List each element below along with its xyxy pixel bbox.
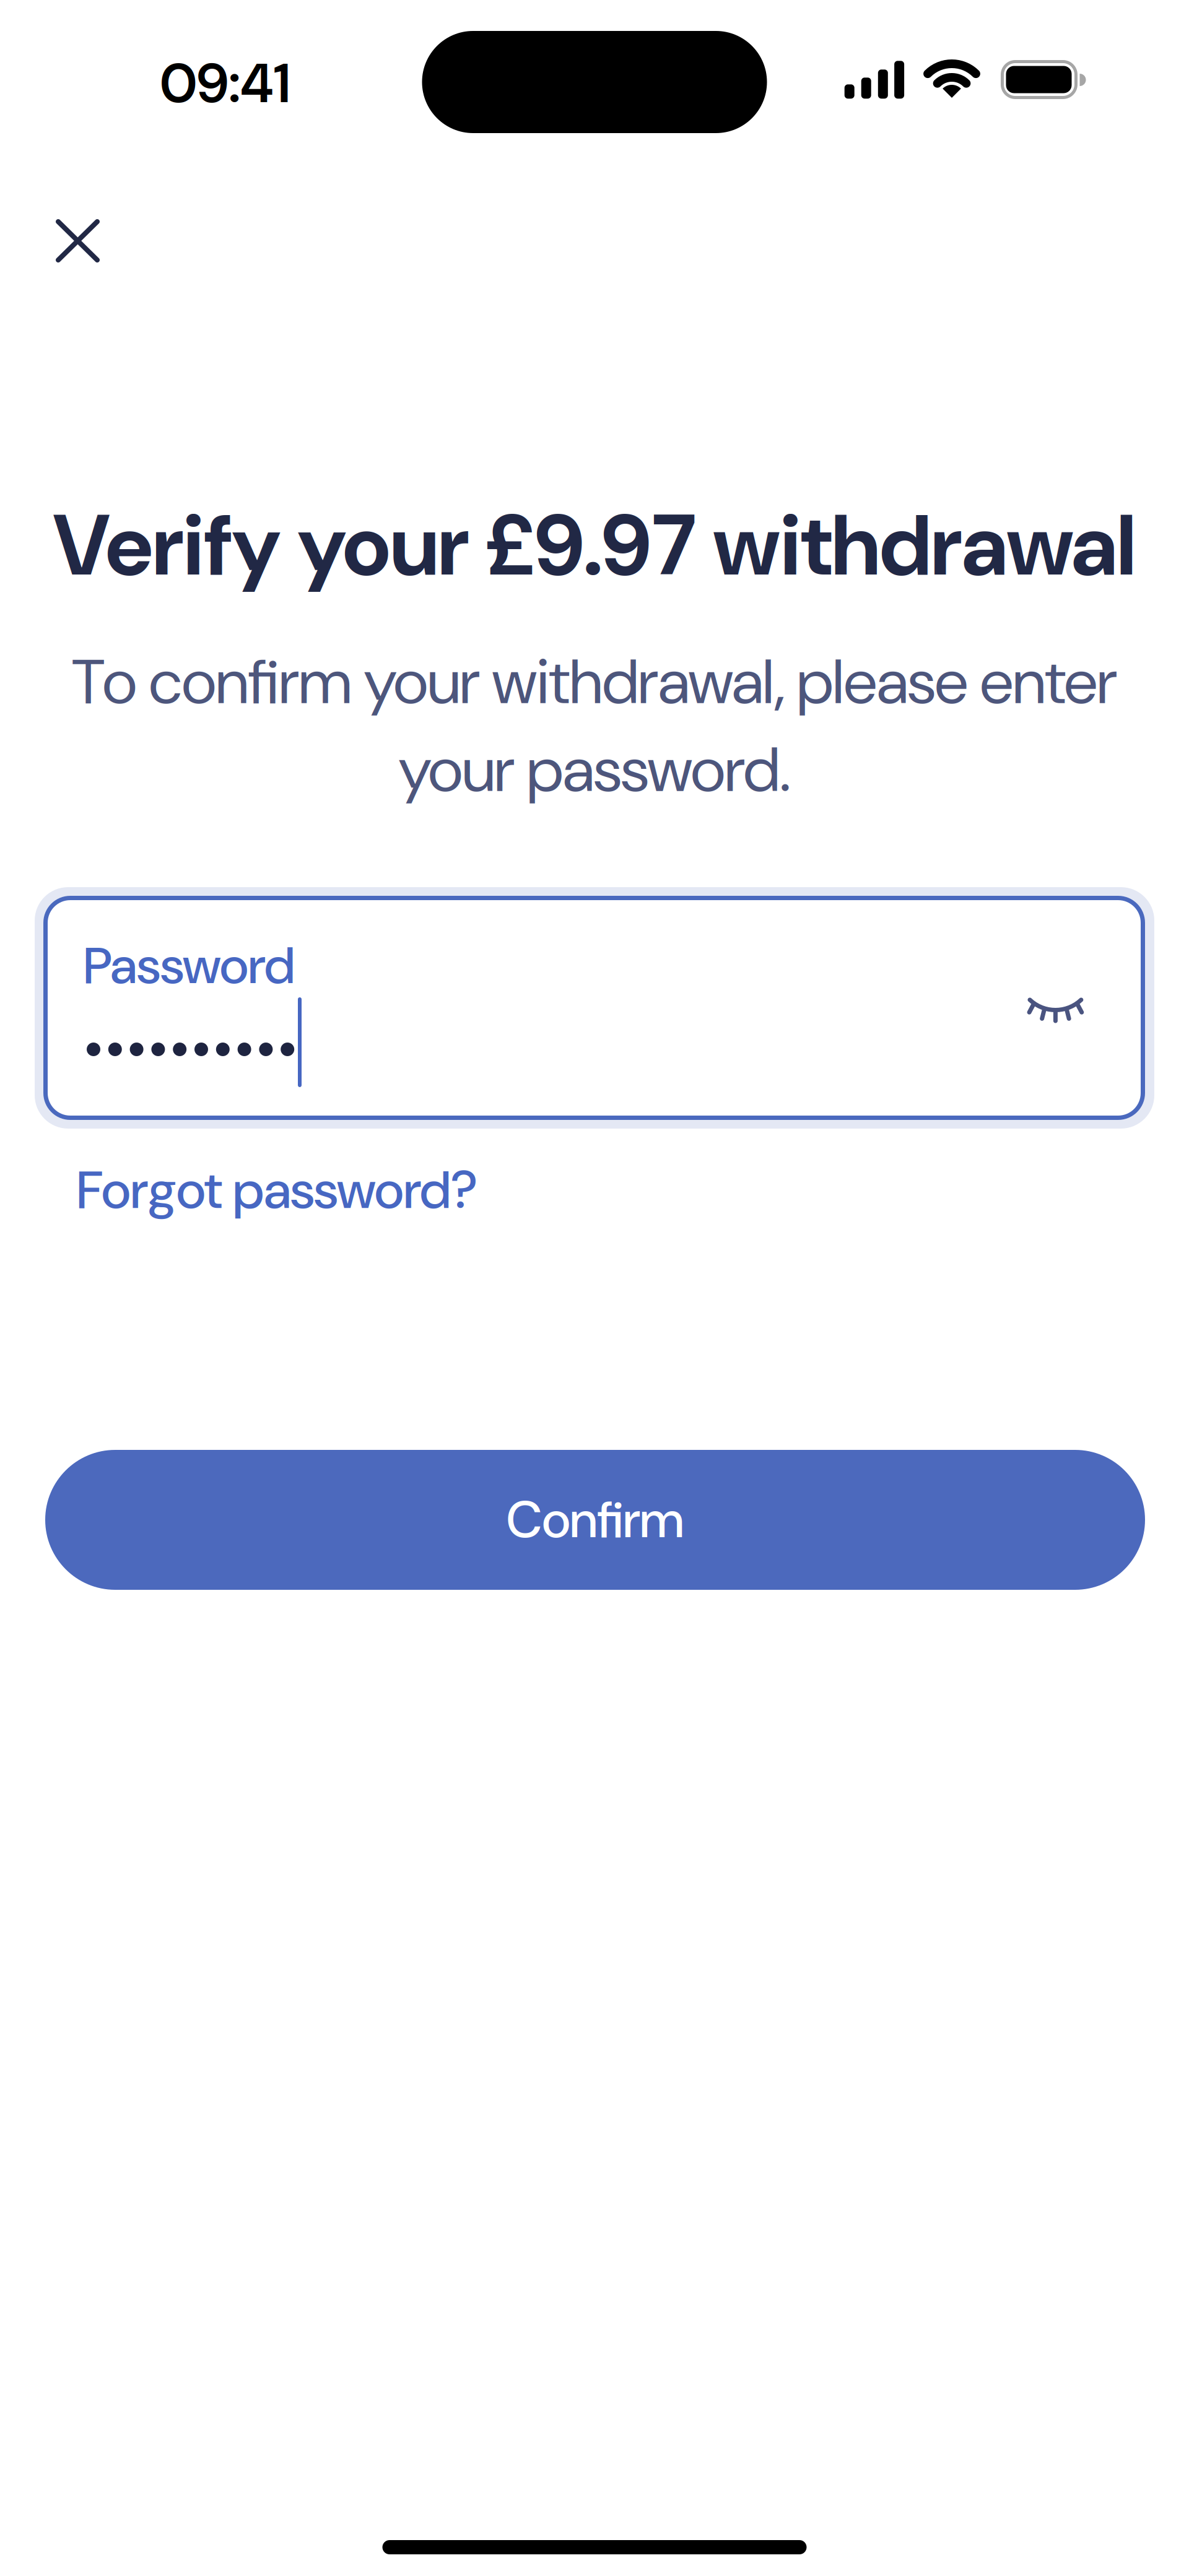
staticText: Password [84, 932, 295, 999]
staticText: Verify your £9.97 withdrawal [53, 491, 1136, 601]
staticText: 09:41 [160, 48, 290, 119]
staticText: Forgot password? [77, 1156, 478, 1224]
button[interactable]: Show password [1013, 981, 1099, 1037]
staticText: Confirm [506, 1487, 684, 1553]
button[interactable]: Close [48, 212, 107, 270]
button[interactable]: Confirm [45, 1450, 1145, 1590]
button[interactable]: Password [43, 896, 1145, 1120]
button[interactable]: Forgot password? [0, 1156, 1189, 1224]
staticText: To confirm your withdrawal, please enter… [72, 641, 1117, 810]
